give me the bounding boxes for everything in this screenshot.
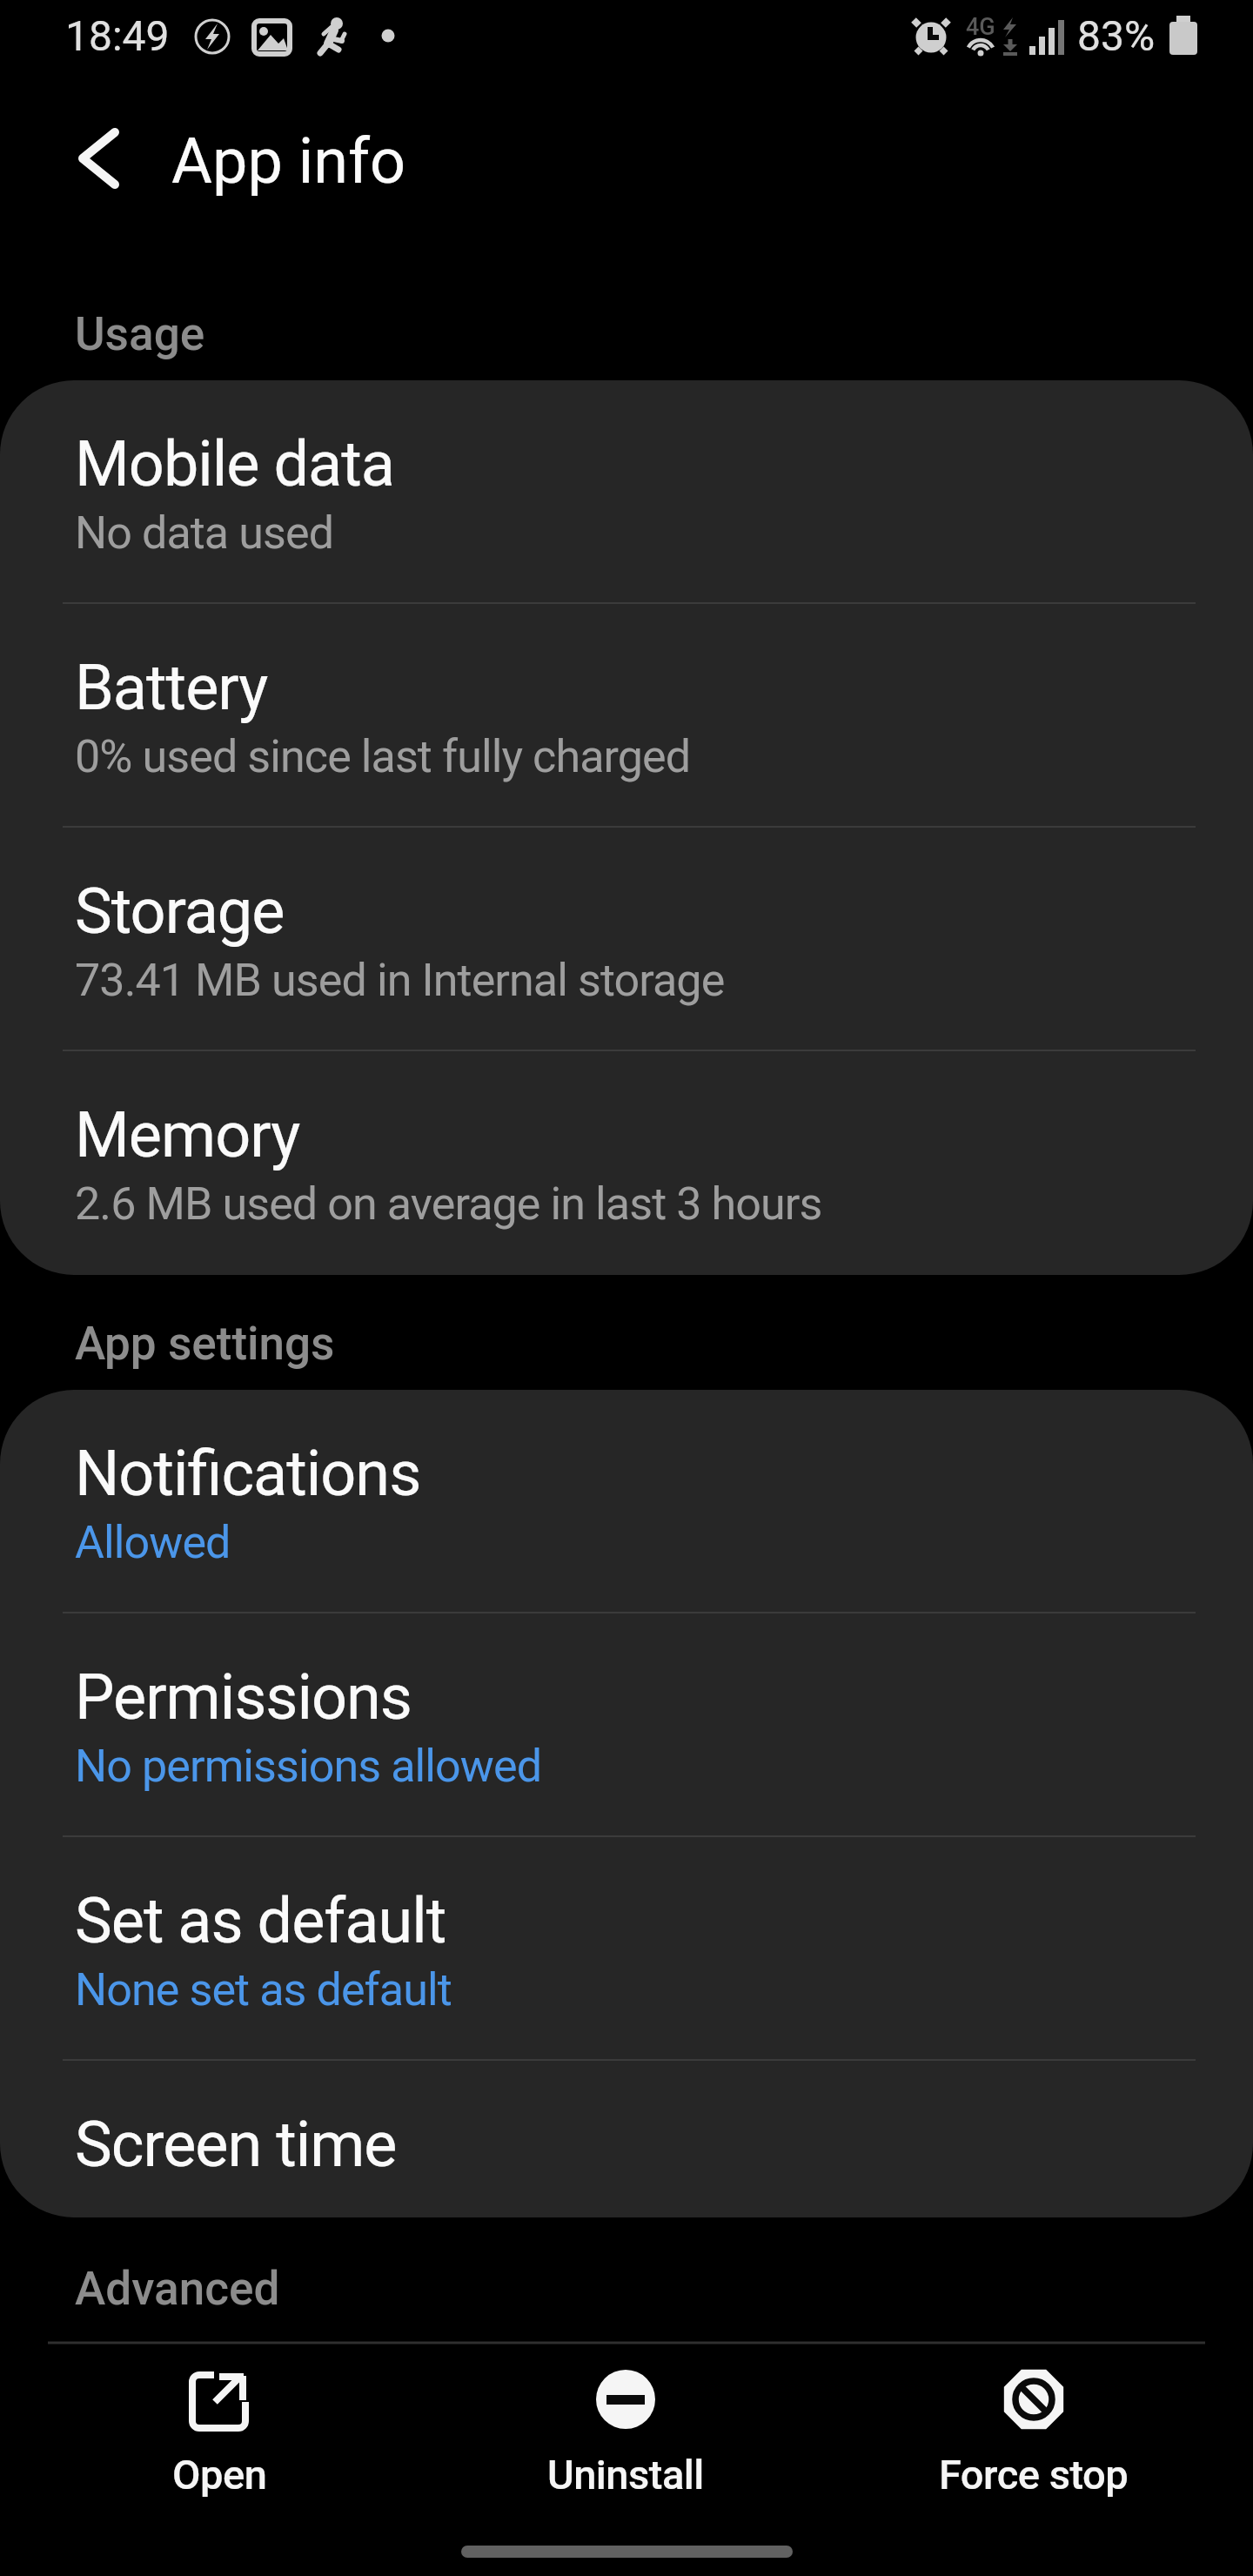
staticText: Permissions	[75, 1660, 412, 1734]
button[interactable]: Permissions	[0, 1613, 1253, 1837]
button[interactable]: Notifications	[0, 1390, 1253, 1613]
button[interactable]: Memory	[0, 1051, 1253, 1275]
staticText: Memory	[75, 1098, 300, 1171]
staticText: Mobile data	[75, 427, 394, 500]
staticText: 4G	[966, 13, 995, 41]
button[interactable]	[48, 117, 135, 200]
button[interactable]: Force stop	[903, 2365, 1164, 2499]
button[interactable]: Uninstall	[495, 2365, 756, 2499]
staticText: 0% used since last fully charged	[75, 730, 691, 783]
staticText: Advanced	[75, 2262, 280, 2316]
staticText: Set as default	[75, 1884, 446, 1957]
staticText: Open	[172, 2451, 267, 2499]
button[interactable]: Set as default	[0, 1837, 1253, 2061]
staticText: None set as default	[75, 1963, 452, 2016]
staticText: 73.41 MB used in Internal storage	[75, 954, 725, 1007]
staticText: App settings	[75, 1317, 335, 1371]
button[interactable]: Mobile data	[0, 380, 1253, 604]
staticText: Allowed	[75, 1516, 231, 1569]
staticText: 18:49	[65, 11, 170, 60]
staticText: Storage	[75, 875, 285, 948]
staticText: Battery	[75, 651, 268, 724]
staticText: No permissions allowed	[75, 1740, 542, 1793]
button[interactable]: Screen time	[0, 2061, 1253, 2217]
staticText: Screen time	[75, 2108, 397, 2181]
staticText: 2.6 MB used on average in last 3 hours	[75, 1177, 822, 1231]
staticText: No data used	[75, 506, 334, 560]
staticText: Force stop	[939, 2451, 1129, 2499]
button[interactable]: Battery	[0, 604, 1253, 828]
staticText: App info	[171, 124, 406, 198]
staticText: 83%	[1077, 11, 1156, 60]
staticText: Uninstall	[547, 2451, 704, 2499]
button[interactable]: Storage	[0, 828, 1253, 1051]
button[interactable]: Open	[89, 2365, 350, 2499]
staticText: Usage	[75, 307, 205, 361]
staticText: Notifications	[75, 1437, 421, 1510]
